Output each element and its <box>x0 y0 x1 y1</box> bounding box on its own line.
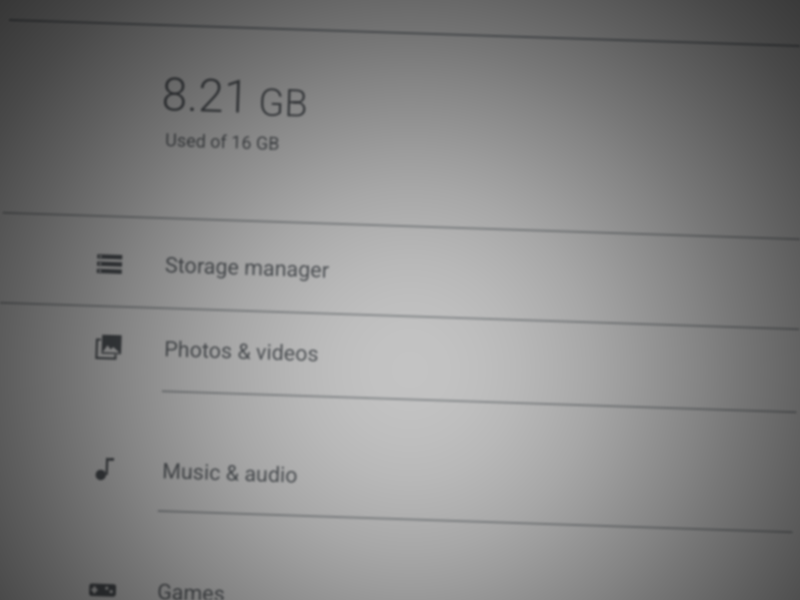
staticText: GB <box>258 80 309 127</box>
staticText: Games <box>157 579 226 600</box>
button[interactable]: Photos and videos <box>0 302 799 411</box>
staticText: Music & audio <box>162 458 299 488</box>
other: Storage manager <box>97 250 122 276</box>
staticText: Photos & videos <box>164 336 319 366</box>
button[interactable]: Music and audio <box>0 385 796 531</box>
staticText: Storage manager <box>165 252 330 283</box>
staticText: 8.21 <box>161 67 250 124</box>
other: Games <box>89 577 115 600</box>
button[interactable]: Storage manager <box>0 212 800 328</box>
button[interactable]: Games <box>0 505 793 600</box>
staticText: Used of 16 GB <box>165 129 280 154</box>
other: Photos and videos <box>96 334 122 360</box>
other: Music and audio <box>94 456 120 482</box>
